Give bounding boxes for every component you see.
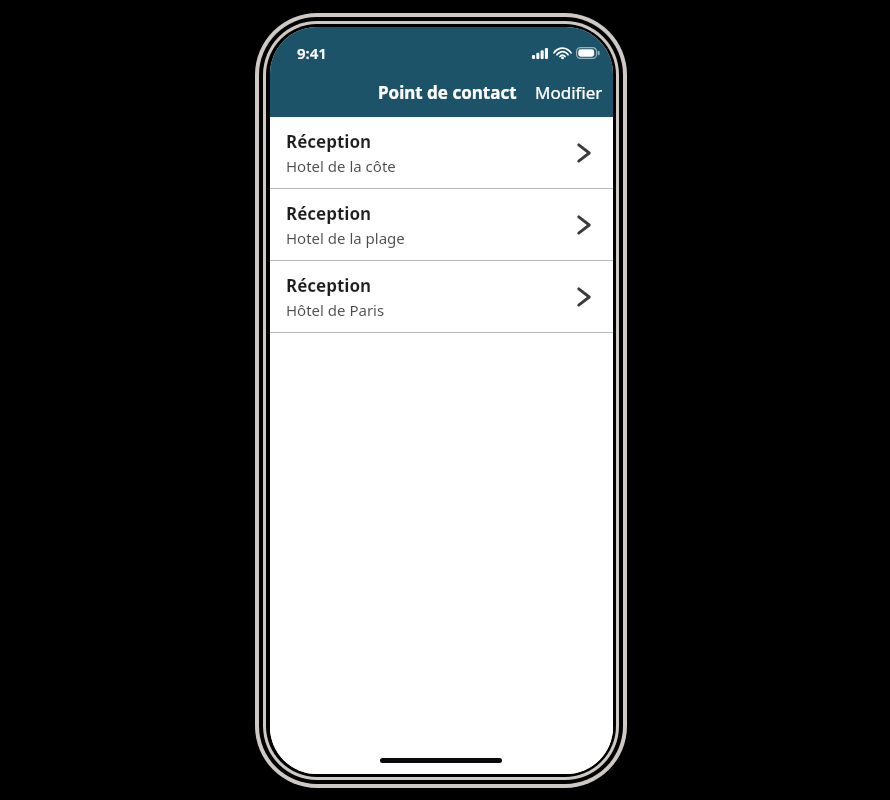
staticText: Réception <box>286 274 372 297</box>
staticText: Hotel de la plage <box>286 228 405 248</box>
button[interactable]: Réception <box>270 117 613 188</box>
button[interactable]: Réception <box>270 261 613 332</box>
staticText: Point de contact <box>378 81 517 104</box>
staticText: 9:41 <box>297 43 327 63</box>
staticText: Réception <box>286 202 372 225</box>
other: Ouvrir <box>573 138 599 168</box>
staticText: Hôtel de Paris <box>286 300 385 320</box>
other: Ouvrir <box>573 282 599 312</box>
staticText: Hotel de la côte <box>286 156 396 176</box>
button[interactable]: Réception <box>270 189 613 260</box>
button[interactable]: Modifier <box>525 75 613 114</box>
other: Ouvrir <box>573 210 599 240</box>
staticText: Réception <box>286 130 372 153</box>
staticText: Modifier <box>535 81 603 104</box>
